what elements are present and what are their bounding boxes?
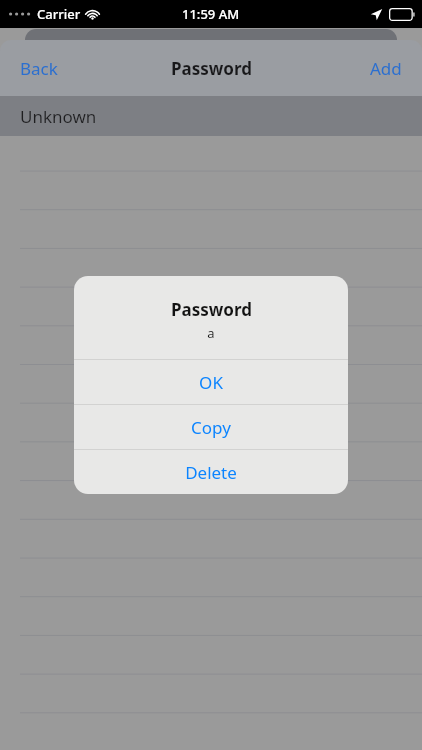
staticText: Copy <box>191 416 231 439</box>
button[interactable]: OK <box>74 360 348 404</box>
other: Location active <box>370 8 383 21</box>
button[interactable]: Unknown <box>0 96 422 136</box>
button[interactable]: Delete <box>74 450 348 494</box>
staticText: Add <box>370 57 402 80</box>
staticText: a <box>207 324 215 342</box>
button[interactable]: Add <box>358 49 414 88</box>
staticText: Delete <box>185 461 237 484</box>
staticText: Back <box>20 57 58 80</box>
staticText: Unknown <box>20 105 97 128</box>
button[interactable]: Copy <box>74 405 348 449</box>
staticText: 11:59 AM <box>182 5 240 23</box>
staticText: Password <box>171 57 252 80</box>
staticText: OK <box>199 371 223 394</box>
staticText: Carrier <box>37 5 81 23</box>
button[interactable]: Back <box>8 49 70 88</box>
staticText: Password <box>171 298 252 321</box>
